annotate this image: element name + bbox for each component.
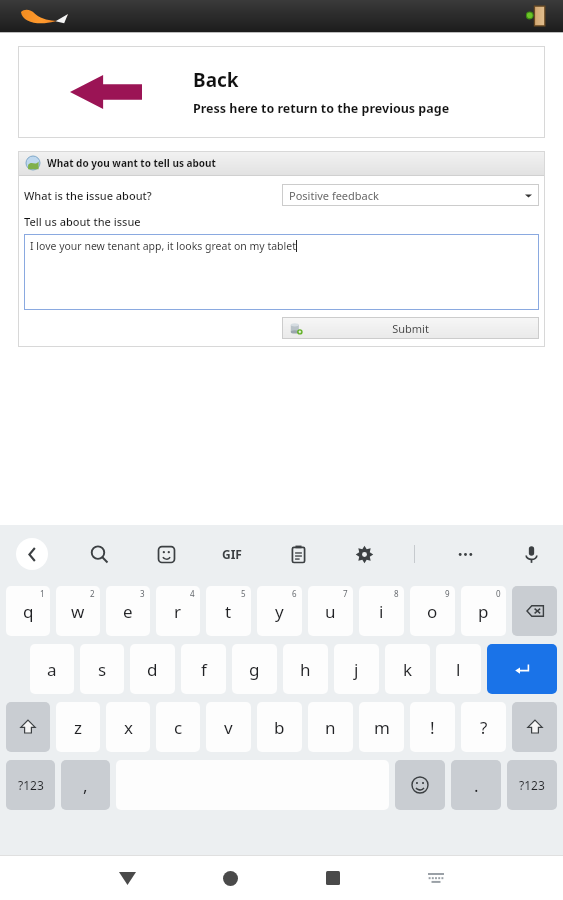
button[interactable]: l [436,644,481,694]
button[interactable]: Switch keyboard [419,861,453,895]
button[interactable]: Back [18,46,545,138]
button[interactable]: Voice input [515,538,547,570]
staticText: x [124,716,133,739]
button[interactable]: Search [83,538,115,570]
button[interactable]: GIF [216,538,248,570]
button[interactable]: i [359,586,404,636]
button[interactable]: j [334,644,379,694]
button[interactable]: n [308,702,353,752]
staticText: p [478,600,489,623]
staticText: d [147,658,158,681]
staticText: n [325,716,336,739]
button[interactable]: . [451,760,501,810]
button[interactable]: ! [410,702,455,752]
button[interactable]: s [80,644,124,694]
button[interactable]: c [156,702,200,752]
staticText: f [201,658,207,681]
button[interactable]: Shift [6,702,50,752]
button[interactable]: b [257,702,302,752]
staticText: 1 [40,588,45,599]
button[interactable]: d [130,644,175,694]
staticText: GIF [222,546,242,562]
staticText: 2 [90,588,95,599]
staticText: i [379,600,384,623]
button[interactable]: r [156,586,200,636]
button[interactable]: Stickers [150,538,182,570]
staticText: k [403,658,413,681]
staticText: a [47,658,57,681]
button[interactable]: ?123 [507,760,557,810]
button[interactable]: I love your new tenant app, it looks gre… [24,234,539,310]
button[interactable]: ?123 [6,760,55,810]
button[interactable]: Positive feedback [282,184,539,206]
button[interactable]: w [56,586,100,636]
staticText: Submit [303,321,518,336]
staticText: 8 [394,588,399,599]
button[interactable]: q [6,586,50,636]
button[interactable]: Clipboard [282,538,314,570]
button[interactable]: o [410,586,455,636]
button[interactable]: Back [110,861,144,895]
staticText: v [224,716,233,739]
button[interactable]: Backspace [512,586,557,636]
button[interactable]: v [206,702,251,752]
button[interactable]: Log out [523,3,549,29]
button[interactable]: e [106,586,150,636]
staticText: c [174,716,183,739]
button[interactable]: Emoji [395,760,445,810]
button[interactable]: Recent apps [316,861,350,895]
button[interactable]: m [359,702,404,752]
button[interactable]: x [106,702,150,752]
staticText: o [427,600,438,623]
button[interactable]: f [181,644,226,694]
staticText: e [123,600,133,623]
button[interactable]: t [206,586,251,636]
button[interactable]: Submit [282,317,539,339]
button[interactable]: Home [213,861,247,895]
staticText: j [354,658,359,681]
staticText: 6 [292,588,297,599]
staticText: l [456,658,461,681]
staticText: q [23,600,34,623]
button[interactable]: ? [461,702,506,752]
button[interactable]: Back [16,538,48,570]
staticText: Back [193,67,239,93]
button[interactable]: Settings [348,538,380,570]
staticText: I love your new tenant app, it looks gre… [30,239,296,253]
button[interactable]: Shift [512,702,557,752]
staticText: u [325,600,336,623]
button[interactable]: a [30,644,74,694]
staticText: r [174,600,182,623]
button[interactable]: g [232,644,277,694]
staticText: Positive feedback [289,188,379,203]
staticText: . [474,774,479,797]
button[interactable]: p [461,586,506,636]
staticText: ? [480,716,488,739]
staticText: b [274,716,285,739]
staticText: t [225,600,232,623]
staticText: z [74,716,82,739]
button[interactable]: , [61,760,110,810]
staticText: m [374,716,390,739]
staticText: , [83,774,88,797]
button[interactable]: h [283,644,328,694]
button[interactable]: More [449,538,481,570]
staticText: ! [430,716,435,739]
staticText: 0 [496,588,501,599]
staticText: 9 [445,588,450,599]
button[interactable]: Enter [487,644,557,694]
staticText: y [275,600,284,623]
staticText: What is the issue about? [24,188,152,203]
staticText: 3 [140,588,145,599]
button[interactable]: u [308,586,353,636]
staticText: s [98,658,107,681]
button[interactable]: z [56,702,100,752]
button[interactable]: y [257,586,302,636]
staticText: h [300,658,311,681]
staticText: ?123 [519,777,545,793]
staticText: g [249,658,260,681]
staticText: What do you want to tell us about [47,156,216,170]
button[interactable]: k [385,644,430,694]
staticText: ?123 [18,777,44,793]
